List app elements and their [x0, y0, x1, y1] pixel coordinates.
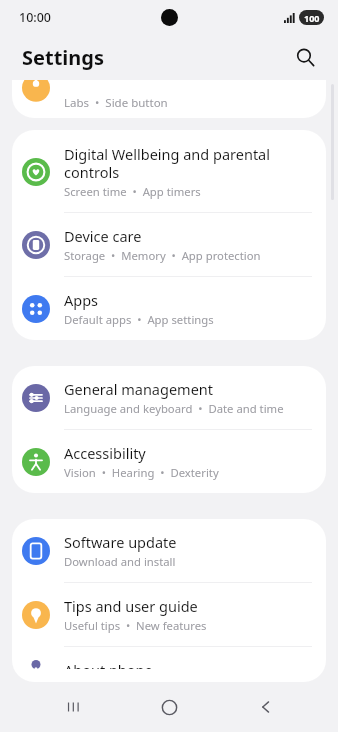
staticText: Accessibility — [64, 443, 146, 463]
button[interactable]: Accessibility — [12, 430, 326, 493]
staticText: Device care — [64, 226, 142, 246]
button[interactable]: Tips and user guide — [12, 583, 326, 646]
staticText: Labs • Side button — [64, 95, 168, 111]
staticText: About phone — [64, 660, 153, 669]
button[interactable]: Software update — [12, 519, 326, 582]
staticText: 100 — [304, 12, 320, 24]
staticText: Tips and user guide — [64, 596, 198, 616]
button[interactable]: About phone — [12, 647, 326, 682]
button[interactable]: Apps — [12, 277, 326, 340]
staticText: Vision • Hearing • Dexterity — [64, 465, 219, 480]
staticText: Digital Wellbeing and parental controls — [64, 144, 270, 182]
button[interactable]: General management — [12, 366, 326, 429]
button[interactable]: Home — [145, 683, 193, 731]
button[interactable]: Back — [242, 683, 290, 731]
staticText: Software update — [64, 532, 177, 552]
staticText: Settings — [22, 44, 104, 71]
button[interactable]: Labs • Side button — [12, 80, 326, 118]
staticText: Default apps • App settings — [64, 312, 214, 327]
staticText: Apps — [64, 290, 99, 310]
staticText: Useful tips • New features — [64, 618, 207, 633]
button[interactable]: Recent apps — [49, 683, 97, 731]
staticText: Download and install — [64, 554, 176, 569]
staticText: Language and keyboard • Date and time — [64, 401, 284, 416]
button[interactable]: Device care — [12, 213, 326, 276]
staticText: Storage • Memory • App protection — [64, 248, 261, 263]
staticText: 10:00 — [19, 9, 52, 26]
staticText: General management — [64, 379, 214, 399]
staticText: Screen time • App timers — [64, 184, 201, 199]
button[interactable]: Digital Wellbeing and parental controls — [12, 130, 326, 212]
button[interactable]: Search — [288, 40, 322, 74]
